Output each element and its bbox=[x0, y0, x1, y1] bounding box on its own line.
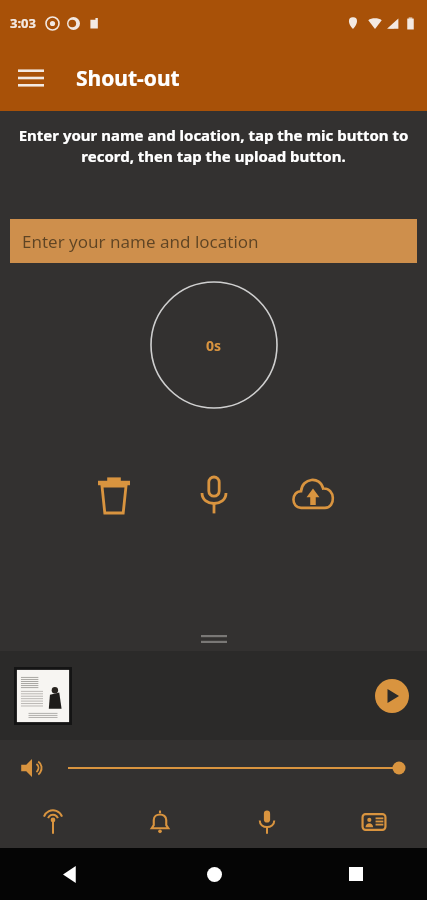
staticText: 3:03 bbox=[10, 14, 36, 32]
staticText: Enter your name and location, tap the mi… bbox=[18, 125, 409, 167]
button[interactable]: Album artwork bbox=[14, 667, 72, 725]
staticText: Shout-out bbox=[76, 64, 180, 93]
button[interactable]: Delete recording bbox=[86, 467, 142, 523]
button[interactable]: Mute volume bbox=[14, 750, 50, 786]
button[interactable]: Recent apps bbox=[334, 852, 378, 896]
button[interactable]: Record with microphone bbox=[186, 467, 242, 523]
button[interactable]: Back bbox=[49, 852, 93, 896]
button[interactable]: Home bbox=[192, 852, 236, 896]
button[interactable]: Notifications bbox=[134, 796, 186, 848]
button[interactable]: Open navigation menu bbox=[8, 55, 54, 101]
button[interactable]: Play bbox=[375, 679, 409, 713]
button[interactable]: Enter your name and location bbox=[10, 219, 417, 263]
button[interactable]: Live broadcast bbox=[27, 796, 79, 848]
button[interactable]: Shout-out bbox=[241, 796, 293, 848]
staticText: Enter your name and location bbox=[22, 230, 259, 253]
button[interactable]: Contact card bbox=[348, 796, 400, 848]
button[interactable]: Upload recording bbox=[285, 467, 341, 523]
staticText: 0s bbox=[206, 336, 222, 355]
